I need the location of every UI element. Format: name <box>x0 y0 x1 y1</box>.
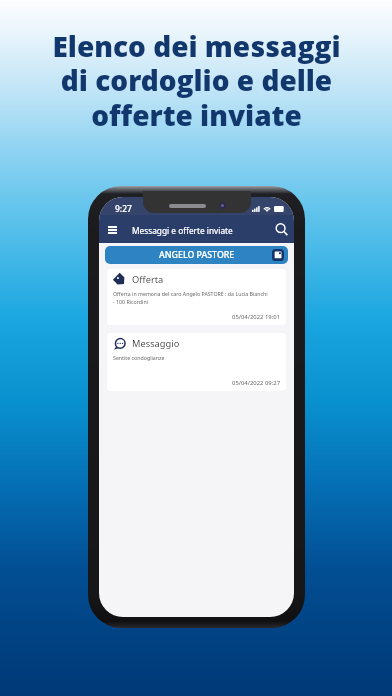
button[interactable]: ANGELO PASTORE <box>105 246 288 264</box>
staticText: ANGELO PASTORE <box>159 249 235 261</box>
staticText: 05/04/2022 19:01 <box>113 313 280 321</box>
staticText: Elenco dei messaggi di cordoglio e delle… <box>52 27 341 134</box>
staticText: 05/04/2022 09:27 <box>113 379 280 387</box>
button[interactable]: Messaggio <box>107 333 286 391</box>
button[interactable]: Open navigation menu <box>104 221 121 238</box>
staticText: 9:27 <box>115 203 132 215</box>
button[interactable]: Offerta <box>107 269 286 325</box>
staticText: Offerta in memoria del caro Angelo PASTO… <box>113 290 270 305</box>
staticText: Messaggi e offerte inviate <box>132 225 233 236</box>
button[interactable]: Open memorial page <box>272 249 284 261</box>
staticText: Sentite condoglianze <box>113 354 165 361</box>
staticText: Offerta <box>132 273 164 286</box>
staticText: Messaggio <box>132 337 180 350</box>
button[interactable]: Search <box>273 221 290 238</box>
